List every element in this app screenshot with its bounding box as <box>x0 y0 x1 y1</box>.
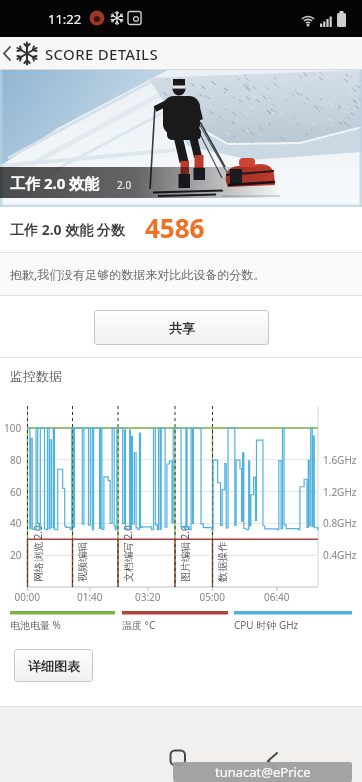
button[interactable] <box>250 738 294 782</box>
staticText: 详细图表 <box>28 658 80 674</box>
staticText: SCORE DETAILS <box>45 44 158 64</box>
button[interactable] <box>156 736 200 780</box>
button[interactable]: 共享 <box>94 310 269 345</box>
button[interactable]: 详细图表 <box>14 649 93 682</box>
staticText: 2.0 <box>117 178 132 192</box>
staticText: 4586 <box>145 210 205 245</box>
staticText: 监控数据 <box>10 368 62 384</box>
staticText: 工作 2.0 效能 <box>10 173 100 193</box>
staticText: 抱歉,我们没有足够的数据来对比此设备的分数。 <box>10 266 266 282</box>
staticText: tunacat@ePrice <box>215 763 311 781</box>
staticText: 共享 <box>169 320 195 336</box>
button[interactable] <box>0 37 44 70</box>
staticText: 工作 2.0 效能 分数 <box>10 220 125 239</box>
staticText: 11:22 <box>48 10 82 28</box>
